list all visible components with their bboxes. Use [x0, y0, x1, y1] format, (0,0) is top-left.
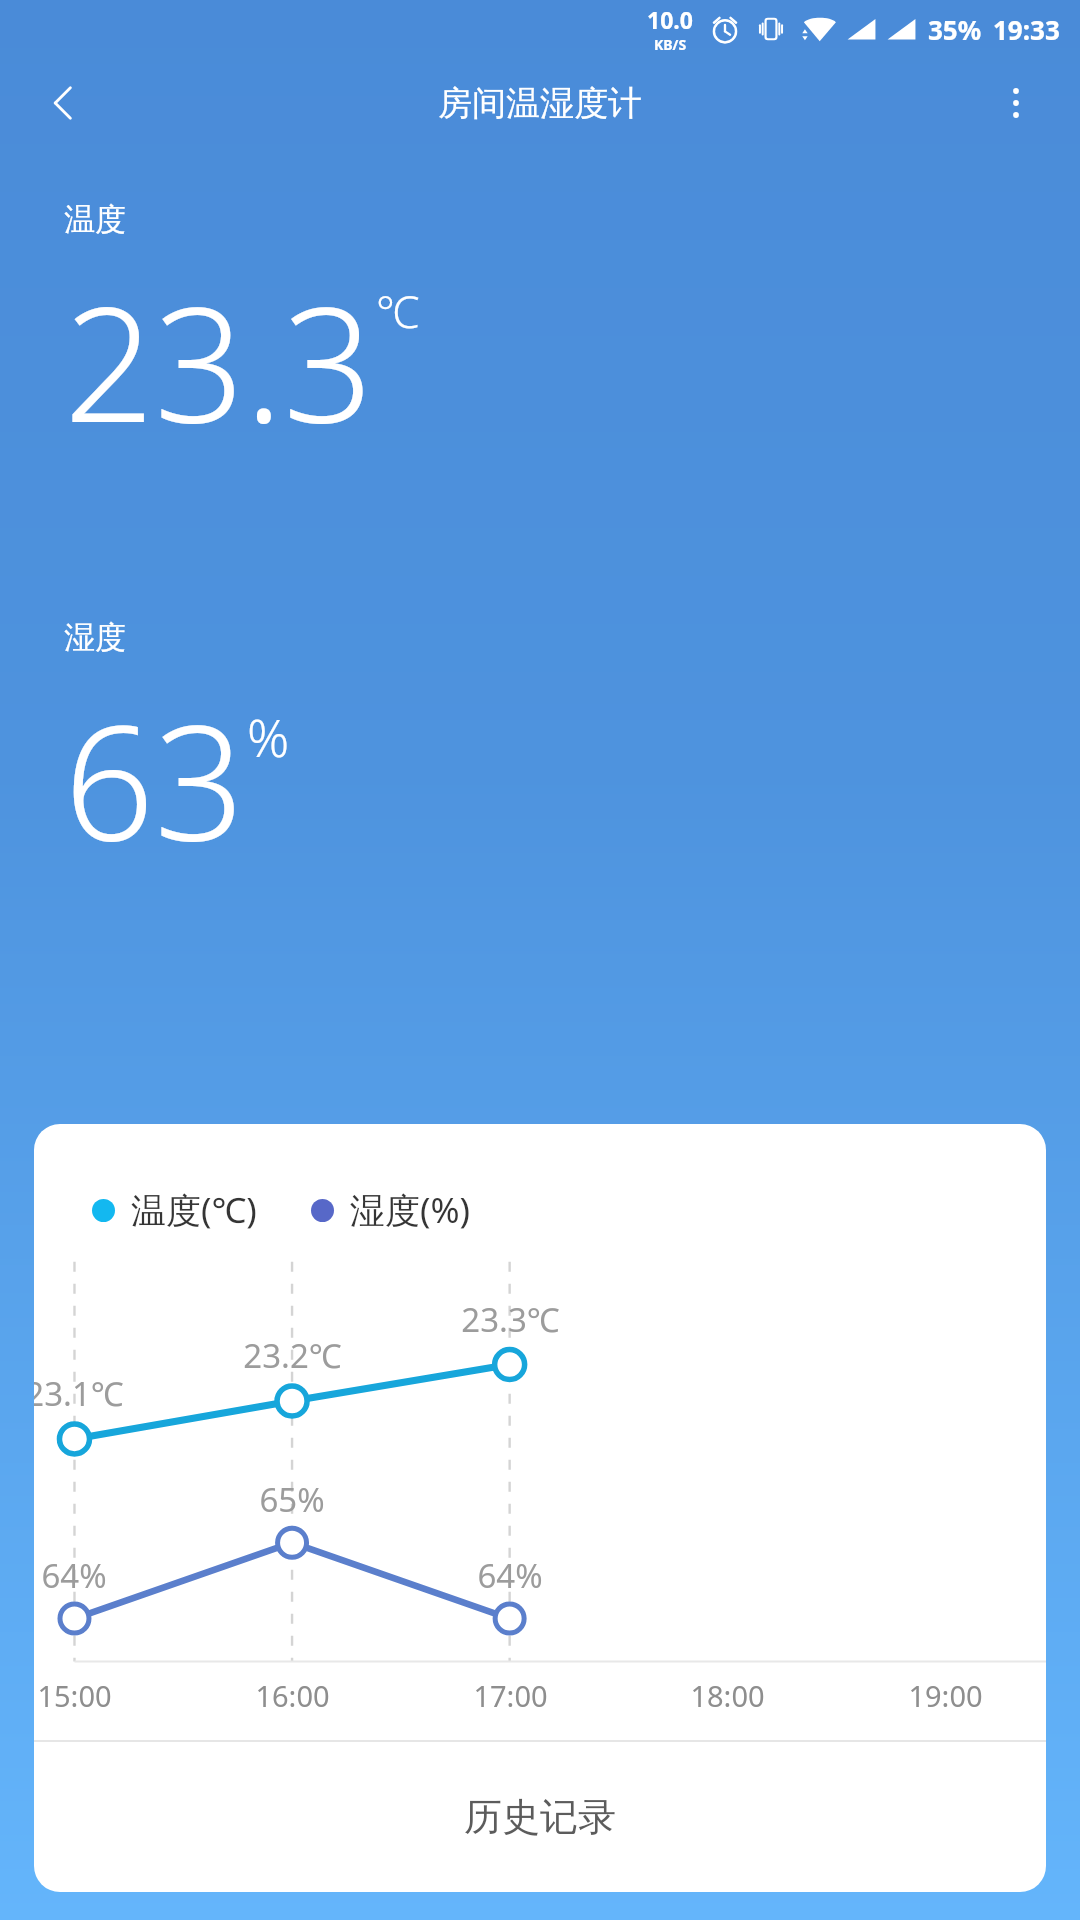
button[interactable]: Back	[26, 65, 102, 141]
staticText: 64%	[477, 1553, 543, 1598]
staticText: 19:00	[908, 1676, 983, 1715]
staticText: 房间温湿度计	[438, 82, 642, 125]
staticText: 35%	[928, 12, 982, 47]
staticText: 64%	[41, 1553, 107, 1598]
staticText: 63	[64, 671, 245, 886]
staticText: 17:00	[473, 1676, 548, 1715]
staticText: 18:00	[690, 1676, 765, 1715]
staticText: ℃	[376, 281, 420, 341]
staticText: 温度	[64, 200, 126, 239]
staticText: 65%	[259, 1477, 325, 1522]
staticText: 23.2℃	[243, 1333, 342, 1378]
staticText: 23.3℃	[461, 1297, 560, 1342]
staticText: 湿度(%)	[350, 1186, 471, 1234]
staticText: 15:00	[37, 1676, 112, 1715]
staticText: 湿度	[64, 618, 126, 657]
staticText: 10.0	[647, 4, 693, 35]
button[interactable]: 历史记录	[34, 1742, 1046, 1892]
staticText: 23.1℃	[34, 1371, 124, 1416]
staticText: 19:33	[993, 12, 1060, 47]
staticText: KB/S	[654, 35, 687, 54]
staticText: 16:00	[255, 1676, 330, 1715]
staticText: 历史记录	[464, 1793, 616, 1841]
staticText: 23.3	[64, 253, 374, 468]
button[interactable]: More options	[978, 65, 1054, 141]
staticText: 温度(℃)	[131, 1186, 257, 1234]
staticText: %	[247, 701, 290, 772]
